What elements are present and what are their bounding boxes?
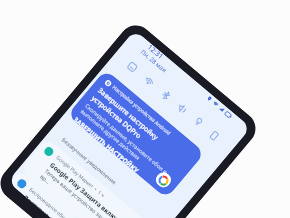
staticText: Завершите настройку устройства DQPro (89, 86, 189, 174)
staticText: Беспроводное обновление (27, 186, 83, 218)
staticText: Теперь ваше устройство защищено от вр… (39, 167, 128, 218)
button[interactable]: Quick setting (168, 95, 195, 121)
button[interactable]: Настройка устройства Android (67, 69, 205, 199)
button[interactable]: Quick setting (136, 68, 163, 94)
button[interactable]: Беспроводное обновление (9, 170, 119, 218)
staticText: Беззвучные уведомления (61, 136, 118, 186)
staticText: Скопируйте данные, установите обои и вып… (79, 102, 176, 186)
staticText: Google Play Маркет • 1 ч (54, 154, 106, 199)
staticText: ЗАВЕРШИТЬ НАСТРОЙКУ (73, 115, 141, 174)
button[interactable]: Quick setting (119, 54, 146, 80)
button[interactable]: Quick setting (201, 122, 227, 148)
staticText: Google Play Защита включена (48, 160, 131, 218)
staticText: Доступно обновление (24, 192, 84, 218)
button[interactable]: Quick setting (185, 109, 211, 135)
staticText: Пн, 28 мая (139, 48, 169, 75)
button[interactable]: Quick setting (152, 82, 179, 108)
staticText: Настройка устройства Android (111, 84, 172, 137)
staticText: 12:31 (145, 43, 165, 62)
button[interactable]: Google Play Маркет • 1 ч (20, 137, 146, 218)
